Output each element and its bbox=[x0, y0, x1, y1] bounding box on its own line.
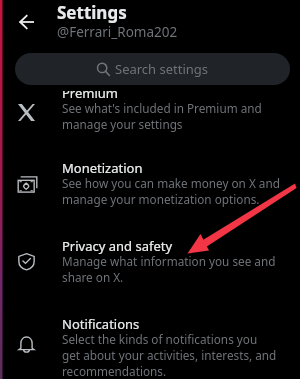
staticText: Search settings bbox=[115, 60, 209, 78]
button[interactable]: Privacy and safety bbox=[0, 229, 300, 295]
staticText: See what's included in Premium and manag… bbox=[62, 100, 262, 132]
button[interactable]: Back bbox=[5, 0, 47, 43]
button[interactable]: Premium bbox=[0, 76, 300, 142]
staticText: Select the kinds of notifications you ge… bbox=[62, 331, 277, 379]
staticText: See how you can make money on X and mana… bbox=[62, 175, 280, 207]
staticText: Notifications bbox=[62, 315, 140, 333]
button[interactable]: Search settings bbox=[15, 53, 290, 85]
staticText: Monetization bbox=[62, 159, 143, 177]
staticText: @Ferrari_Roma202 bbox=[57, 23, 178, 41]
button[interactable]: Monetization bbox=[0, 151, 300, 217]
staticText: Premium bbox=[62, 84, 119, 102]
staticText: Settings bbox=[57, 1, 127, 24]
button[interactable]: Notifications bbox=[0, 307, 300, 379]
staticText: Manage what information you see and shar… bbox=[62, 253, 276, 285]
staticText: Privacy and safety bbox=[62, 237, 173, 255]
